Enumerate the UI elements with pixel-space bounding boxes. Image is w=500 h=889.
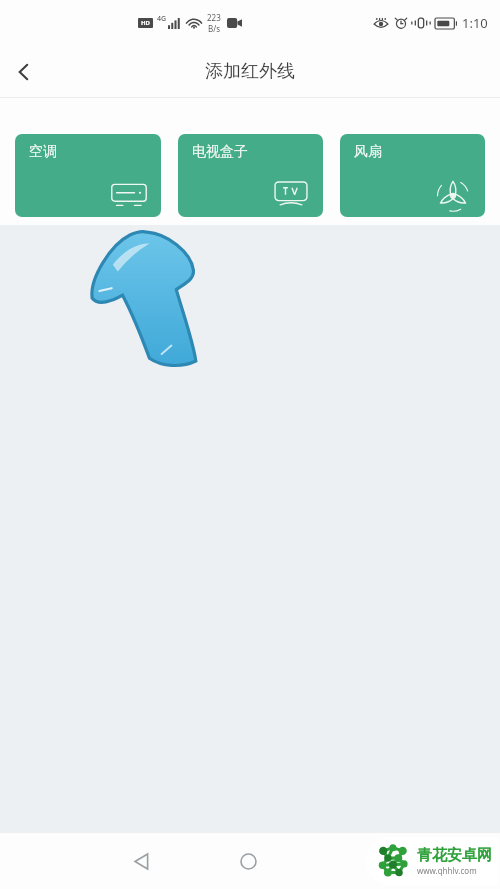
staticText: B/s (208, 23, 221, 34)
button[interactable]: 风扇 (340, 134, 485, 217)
staticText: 223 (207, 12, 221, 23)
staticText: 青花安卓网 (417, 846, 492, 865)
staticText: 空调 (29, 143, 57, 161)
button[interactable]: Home (222, 835, 274, 887)
staticText: 添加红外线 (205, 60, 295, 83)
staticText: HD (141, 19, 150, 27)
staticText: www.qhhlv.com (417, 865, 477, 876)
staticText: 风扇 (354, 143, 382, 161)
staticText: 电视盒子 (192, 143, 248, 161)
button[interactable]: Back (115, 835, 167, 887)
button[interactable]: 空调 (15, 134, 161, 217)
staticText: 1:10 (462, 14, 488, 32)
button[interactable]: Back (0, 48, 48, 96)
staticText: 4G (157, 14, 167, 24)
button[interactable]: 电视盒子 (178, 134, 323, 217)
